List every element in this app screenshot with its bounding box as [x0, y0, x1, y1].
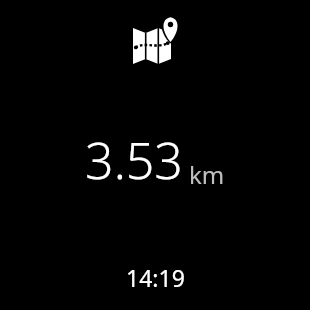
button[interactable]: 3.53 [85, 126, 225, 194]
button[interactable]: Map route [129, 14, 181, 66]
button[interactable]: 14:19 [126, 262, 185, 293]
staticText: 3.53 [85, 126, 183, 194]
staticText: 14:19 [126, 262, 185, 293]
staticText: km [189, 158, 225, 191]
